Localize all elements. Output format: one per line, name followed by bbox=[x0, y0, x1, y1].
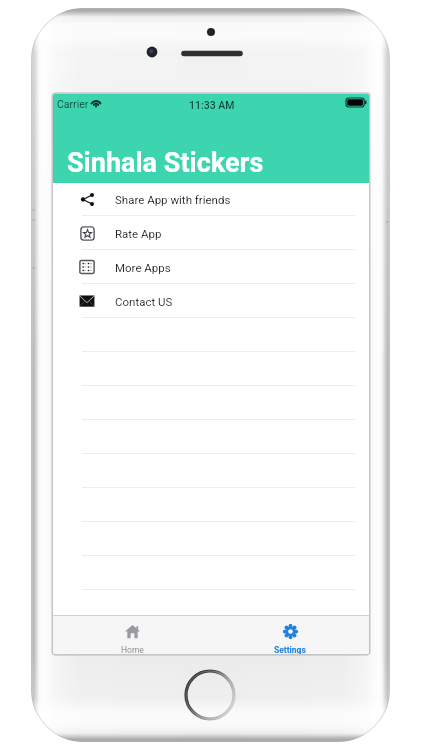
staticText: Sinhala Stickers bbox=[67, 147, 264, 179]
button[interactable]: Contact US bbox=[53, 284, 369, 318]
staticText: 11:33 AM bbox=[189, 99, 235, 111]
staticText: Home bbox=[121, 645, 144, 654]
staticText: Carrier bbox=[57, 98, 89, 110]
button[interactable]: Settings bbox=[211, 616, 369, 654]
staticText: Contact US bbox=[115, 295, 173, 308]
button[interactable]: Share App with friends bbox=[53, 182, 369, 216]
button[interactable]: More Apps bbox=[53, 250, 369, 284]
button[interactable]: Rate App bbox=[53, 216, 369, 250]
staticText: Share App with friends bbox=[115, 193, 231, 206]
button[interactable]: Home bbox=[53, 616, 211, 654]
staticText: Rate App bbox=[115, 227, 162, 240]
staticText: More Apps bbox=[115, 261, 171, 274]
staticText: Settings bbox=[274, 645, 306, 654]
